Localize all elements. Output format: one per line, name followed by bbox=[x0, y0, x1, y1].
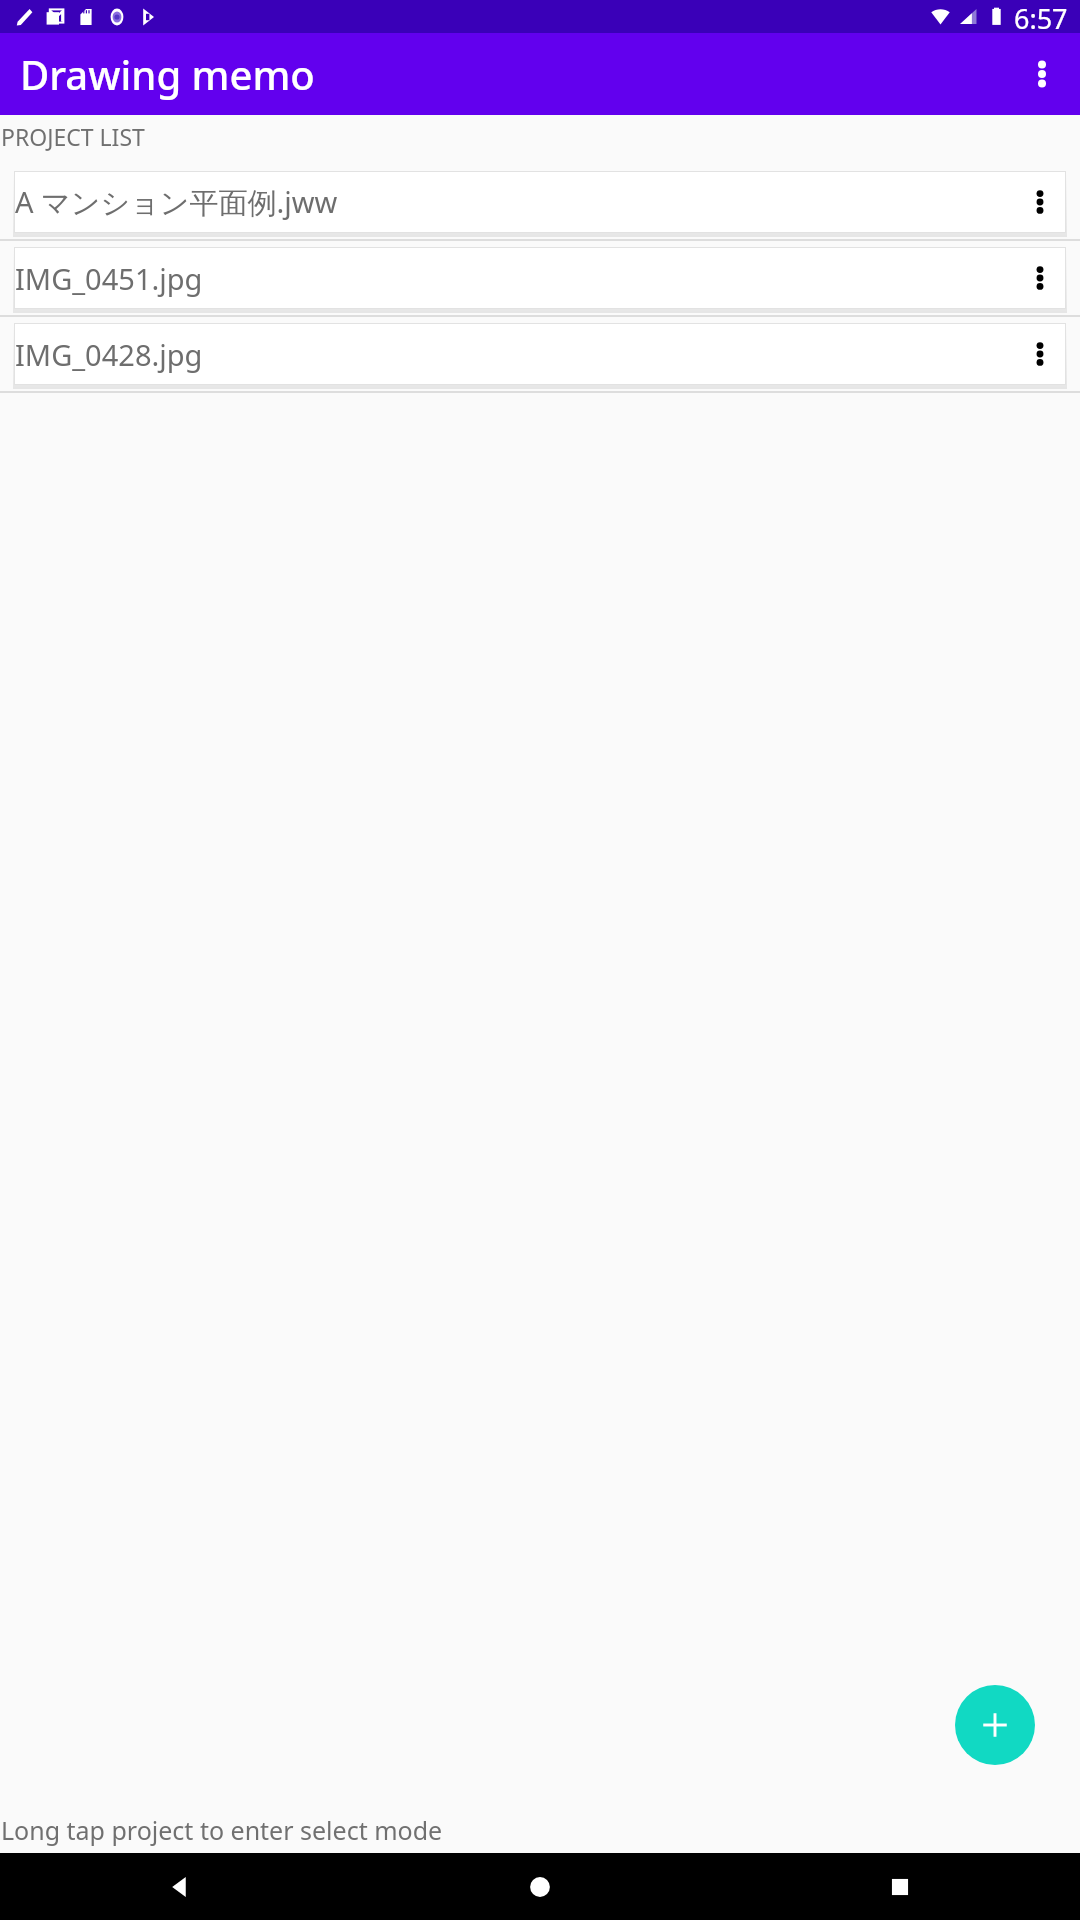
button[interactable]: Recents bbox=[720, 1853, 1080, 1920]
button[interactable]: More options bbox=[1014, 252, 1066, 304]
button[interactable]: IMG_0451.jpg bbox=[0, 241, 1080, 315]
button[interactable]: Home bbox=[360, 1853, 720, 1920]
staticText: IMG_0451.jpg bbox=[15, 259, 1014, 298]
staticText: 6:57 bbox=[1014, 0, 1068, 33]
staticText: A マンション平面例.jww bbox=[15, 182, 1014, 222]
button[interactable]: Back bbox=[0, 1853, 360, 1920]
staticText: Long tap project to enter select mode bbox=[1, 1813, 443, 1847]
staticText: Drawing memo bbox=[20, 47, 315, 101]
staticText: IMG_0428.jpg bbox=[15, 335, 1014, 374]
button[interactable]: A マンション平面例.jww bbox=[0, 165, 1080, 239]
button[interactable]: More options bbox=[1014, 176, 1066, 228]
button[interactable]: More options bbox=[1014, 46, 1070, 102]
button[interactable]: More options bbox=[1014, 328, 1066, 380]
staticText: PROJECT LIST bbox=[1, 121, 145, 152]
button[interactable]: IMG_0428.jpg bbox=[0, 317, 1080, 391]
button[interactable]: Add project bbox=[955, 1685, 1035, 1765]
